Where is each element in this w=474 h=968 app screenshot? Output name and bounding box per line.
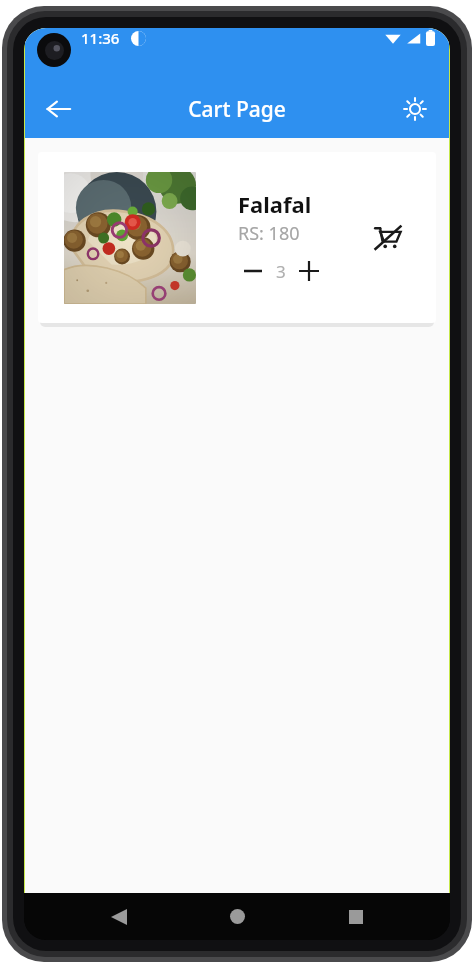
staticText: 3 <box>276 260 286 283</box>
button[interactable]: Toggle theme <box>391 85 439 133</box>
button[interactable]: Recent apps <box>332 893 380 940</box>
button[interactable]: Back <box>95 893 143 940</box>
button[interactable]: Falafal <box>38 152 436 323</box>
button[interactable]: Back <box>35 85 83 133</box>
button[interactable]: Home <box>213 893 261 940</box>
staticText: Falafal <box>238 189 312 219</box>
staticText: RS: 180 <box>238 221 300 246</box>
button[interactable]: Increase quantity <box>294 256 324 286</box>
button[interactable]: Decrease quantity <box>238 256 268 286</box>
staticText: 11:36 <box>81 28 120 48</box>
staticText: Cart Page <box>188 95 286 124</box>
button[interactable]: Remove from cart <box>366 216 410 260</box>
